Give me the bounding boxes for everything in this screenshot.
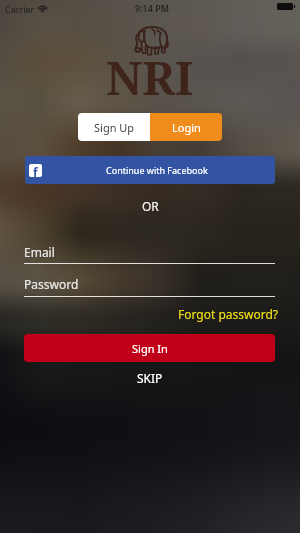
button[interactable]: Forgot password? <box>170 304 300 324</box>
button[interactable]: Password <box>24 276 275 292</box>
staticText: NRI <box>106 46 194 109</box>
staticText: 9:14 PM <box>135 2 169 14</box>
other: Battery <box>277 3 295 10</box>
other: Wi-Fi <box>38 5 47 13</box>
button[interactable]: Sign Up <box>78 113 150 141</box>
staticText: SKIP <box>137 370 163 386</box>
staticText: f <box>33 164 38 177</box>
staticText: OR <box>142 198 159 214</box>
staticText: Sign Up <box>94 120 135 135</box>
other: NRI elephant logo <box>132 23 171 55</box>
button[interactable]: Continue with Facebook <box>25 156 275 184</box>
staticText: Password <box>24 276 79 292</box>
button[interactable]: Login <box>150 113 222 141</box>
button[interactable]: Email <box>24 244 275 260</box>
staticText: Forgot password? <box>178 306 279 322</box>
button[interactable]: Sign In <box>24 334 275 362</box>
staticText: Email <box>24 244 55 260</box>
staticText: Sign In <box>132 341 168 356</box>
staticText: Login <box>172 120 201 135</box>
button[interactable]: SKIP <box>123 366 177 390</box>
staticText: Carrier <box>5 3 35 15</box>
staticText: Continue with Facebook <box>106 164 208 176</box>
